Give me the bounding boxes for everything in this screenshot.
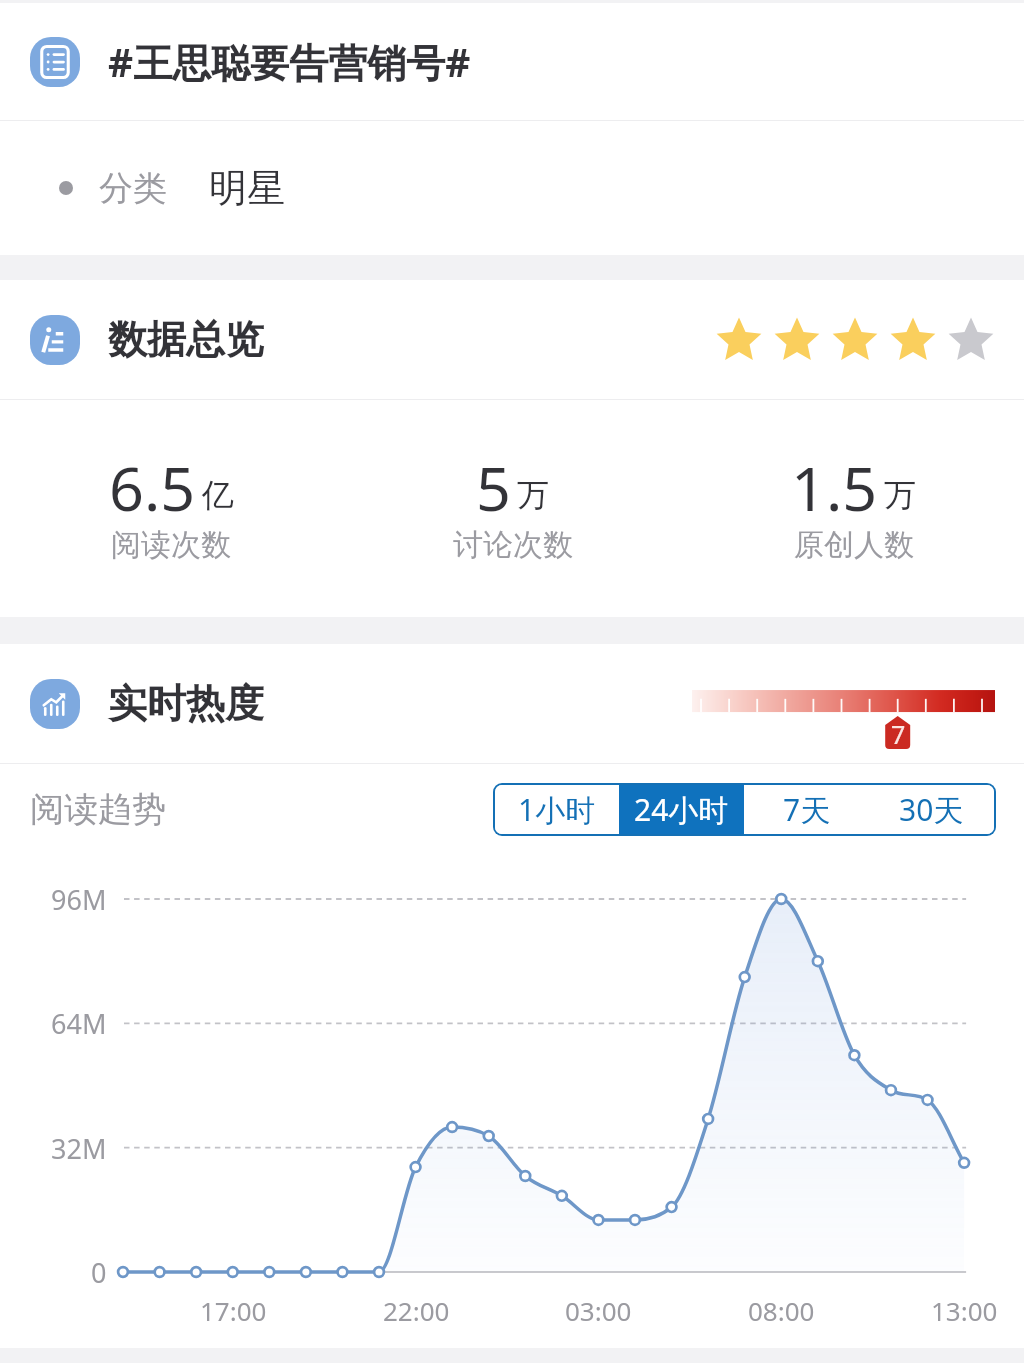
staticText: 5 [476, 446, 511, 529]
staticText: 96M [51, 881, 107, 918]
staticText: 32M [51, 1130, 107, 1167]
staticText: 阅读趋势 [30, 788, 166, 831]
staticText: 1.5 [791, 446, 878, 529]
staticText: 万 [884, 475, 916, 515]
staticText: 08:00 [748, 1293, 815, 1328]
button[interactable]: 分类 [0, 121, 1024, 255]
staticText: 7 [891, 717, 906, 751]
staticText: 17:00 [200, 1293, 267, 1328]
button[interactable]: 24小时 [619, 785, 744, 834]
staticText: 原创人数 [794, 526, 914, 564]
staticText: 万 [517, 475, 549, 515]
staticText: 明星 [209, 164, 285, 212]
staticText: #王思聪要告营销号# [108, 35, 471, 88]
other: 热度指数 7 [692, 644, 995, 763]
button[interactable]: 30天 [869, 785, 994, 834]
staticText: 6.5 [109, 446, 196, 529]
staticText: 1小时 [518, 789, 596, 830]
staticText: 13:00 [931, 1293, 998, 1328]
staticText: 03:00 [565, 1293, 632, 1328]
button[interactable]: 实时热度 [0, 644, 1024, 763]
button[interactable]: 1.5 [683, 400, 1024, 617]
staticText: 分类 [99, 167, 167, 210]
staticText: 讨论次数 [453, 526, 573, 564]
staticText: 7天 [783, 789, 831, 830]
staticText: 亿 [202, 475, 234, 515]
button[interactable]: 7天 [744, 785, 869, 834]
button[interactable]: 6.5 [0, 400, 342, 617]
staticText: 数据总览 [108, 315, 264, 364]
button[interactable]: #王思聪要告营销号# [0, 3, 1024, 120]
staticText: 30天 [899, 789, 964, 830]
staticText: 22:00 [383, 1293, 450, 1328]
staticText: 64M [51, 1005, 107, 1042]
staticText: 0 [91, 1254, 107, 1291]
button[interactable]: 5 [342, 400, 683, 617]
staticText: 24小时 [634, 789, 729, 830]
staticText: 阅读次数 [111, 526, 231, 564]
button[interactable]: 1小时 [495, 785, 619, 834]
button[interactable]: 数据总览 [0, 280, 1024, 399]
staticText: 实时热度 [108, 679, 264, 728]
